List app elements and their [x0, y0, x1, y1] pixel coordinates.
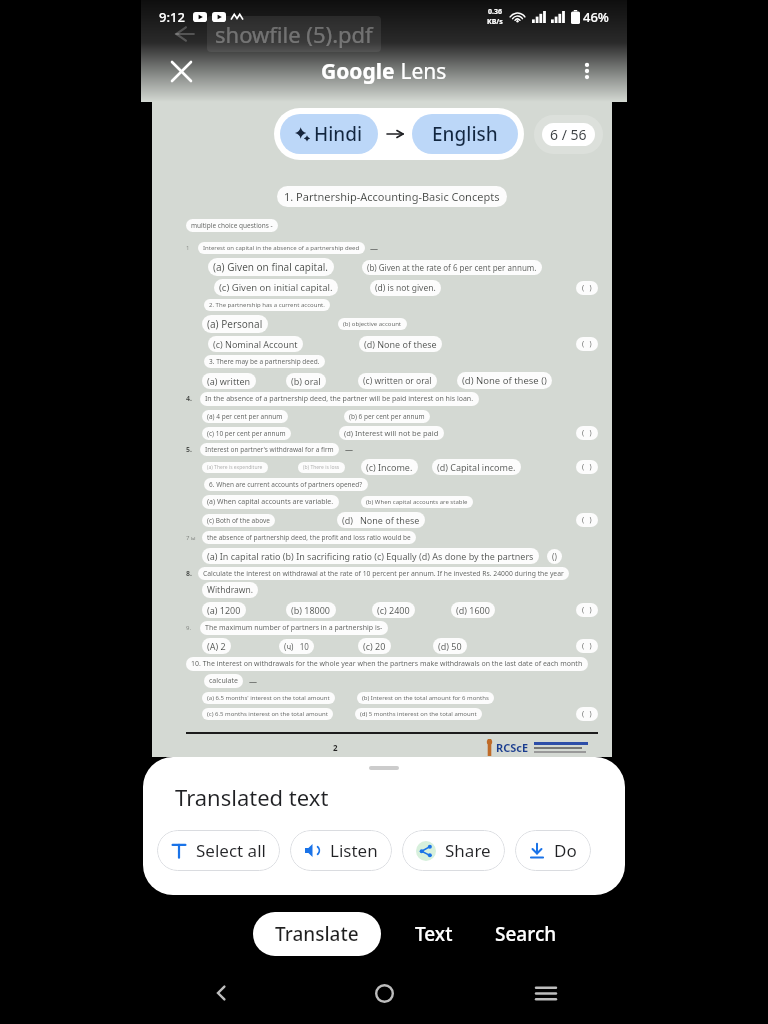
button[interactable]: Swap languages [378, 126, 412, 142]
staticText: (c) 2400 [377, 604, 410, 616]
staticText: 3. There may be a partnership deed. [209, 357, 320, 366]
button[interactable]: Home [303, 962, 465, 1024]
staticText: Text [415, 921, 453, 947]
staticText: Do [554, 839, 577, 862]
staticText: ( ) [582, 283, 592, 293]
staticText: (a) Personal [207, 317, 263, 331]
staticText: ( ) [582, 339, 592, 349]
staticText: ( ) [582, 709, 592, 719]
staticText: KB/s [487, 17, 503, 27]
staticText: calculate [209, 676, 238, 686]
staticText: 10. The interest on withdrawals for the … [191, 659, 583, 669]
staticText: 2. The partnership has a current account… [209, 301, 325, 309]
staticText: RCScE [496, 740, 529, 755]
staticText: Google [321, 57, 395, 86]
staticText: 8. [186, 569, 192, 579]
staticText: Interest on capital in the absence of a … [203, 244, 360, 252]
staticText: (a) 4 per cent per annum [207, 412, 283, 421]
staticText: (c) written or oral [363, 375, 432, 387]
staticText: (a) written [207, 375, 251, 387]
button[interactable]: Do [515, 830, 591, 871]
staticText: 7 ы [186, 534, 196, 542]
staticText: ( ) [582, 462, 592, 472]
staticText: 0.36 [488, 7, 502, 17]
staticText: (d) Capital income. [437, 461, 516, 473]
staticText: — [345, 444, 353, 455]
button[interactable]: Hindi [280, 114, 378, 154]
staticText: ( ) [582, 641, 592, 651]
staticText: (d) None of these () [462, 374, 547, 387]
button[interactable]: Close [161, 51, 201, 91]
button[interactable]: Share [402, 830, 505, 871]
button[interactable]: Listen [290, 830, 392, 871]
staticText: (a) In capital ratio (b) In sacrificing … [207, 550, 534, 562]
staticText: Translated text [175, 782, 329, 812]
staticText: Calculate the interest on withdrawal at … [203, 569, 564, 578]
staticText: Search [495, 921, 557, 947]
staticText: Hindi [314, 121, 363, 147]
staticText: ( ) [582, 515, 592, 525]
staticText: Lens [395, 57, 447, 86]
staticText: (a) There is expenditure [207, 464, 263, 471]
staticText: (a) 1200 [207, 604, 241, 616]
staticText: 46% [583, 8, 609, 26]
staticText: (c) Both of the above [207, 516, 270, 525]
staticText: (c) 10 per cent per annum [207, 429, 286, 438]
staticText: () [552, 551, 557, 562]
button[interactable]: English [412, 114, 518, 154]
staticText: (b) 18000 [291, 604, 331, 616]
staticText: (b) objective account [343, 320, 402, 328]
staticText: (b) Given at the rate of 6 per cent per … [367, 262, 537, 273]
staticText: ( ) [582, 605, 592, 615]
staticText: (a) Given on final capital. [213, 260, 329, 274]
staticText: (d) 1600 [456, 604, 490, 616]
staticText: (d) 50 [438, 640, 462, 652]
staticText: 9:12 [159, 8, 185, 26]
button[interactable]: Text [407, 912, 461, 956]
staticText: (c) Given on initial capital. [219, 281, 333, 294]
staticText: the absence of partnership deed, the pro… [207, 533, 411, 542]
staticText: 5. [186, 445, 192, 455]
staticText: (A) 2 [207, 640, 226, 652]
staticText: (a) 6.5 months' interest on the total am… [207, 694, 330, 702]
staticText: (d) is not given. [375, 282, 436, 294]
staticText: (c) 6.5 months interest on the total amo… [207, 710, 328, 718]
staticText: (c) Income. [366, 461, 413, 473]
other: Back [171, 22, 195, 46]
staticText: (a) When capital accounts are variable. [207, 497, 334, 507]
staticText: Listen [330, 839, 378, 862]
staticText: ( ) [582, 428, 592, 438]
staticText: (c) Nominal Account [213, 338, 298, 350]
staticText: (b) 6 per cent per annum [349, 412, 425, 421]
staticText: 4. [186, 394, 192, 404]
staticText: Translate [275, 921, 359, 947]
button[interactable]: Recent apps [465, 962, 627, 1024]
staticText: The maximum number of partners in a part… [205, 623, 383, 633]
staticText: Share [445, 839, 491, 862]
button[interactable]: 6 / 56 [534, 115, 603, 154]
staticText: Withdrawn. [207, 584, 253, 596]
staticText: Interest on partner's withdrawal for a f… [205, 445, 334, 454]
staticText: English [432, 121, 498, 147]
button[interactable]: Back [141, 962, 303, 1024]
staticText: (b) When capital accounts are stable [366, 498, 468, 506]
button[interactable]: Search [487, 912, 565, 956]
button[interactable]: Translate [253, 912, 381, 956]
staticText: 2 [333, 742, 338, 753]
staticText: Select all [196, 839, 266, 862]
staticText: (d) Interest will not be paid [344, 428, 439, 438]
staticText: 6. When are current accounts of partners… [209, 480, 363, 489]
staticText: (ч) 10 [284, 641, 309, 652]
staticText: showfile (5).pdf [215, 19, 373, 49]
staticText: 1 [186, 244, 190, 252]
button[interactable]: More options [567, 51, 607, 91]
staticText: In the absence of a partnership deed, th… [205, 394, 474, 404]
staticText: 9. [186, 624, 192, 632]
staticText: (b) Interest on the total amount for 6 m… [362, 694, 489, 702]
staticText: (c) 20 [363, 640, 386, 652]
staticText: 1. Partnership-Accounting-Basic Concepts [284, 189, 500, 204]
staticText: (d) 5 months interest on the total amoun… [360, 710, 477, 718]
staticText: — [249, 676, 257, 687]
button[interactable]: Select all [157, 830, 280, 871]
staticText: multiple choice questions - [191, 221, 273, 230]
